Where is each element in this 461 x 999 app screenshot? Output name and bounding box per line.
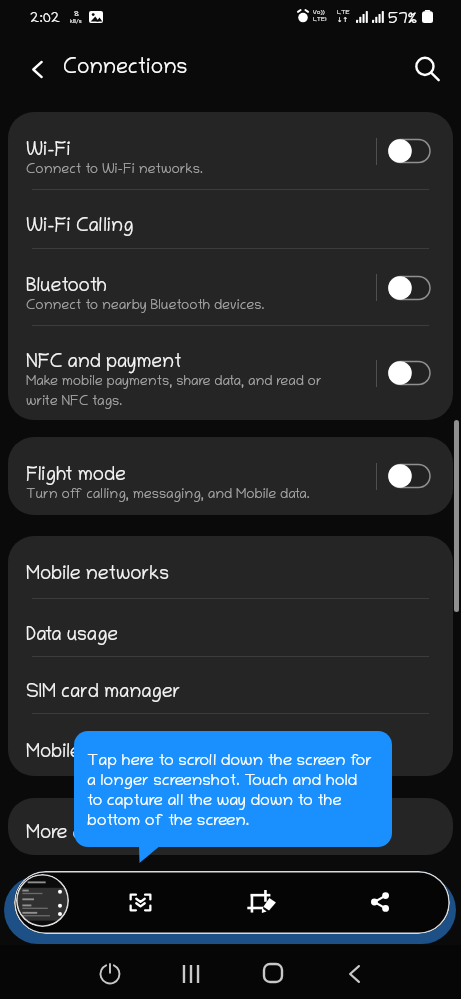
staticText: 8 bbox=[74, 10, 79, 19]
staticText: ↓↑ bbox=[337, 16, 349, 24]
staticText: 57% bbox=[388, 11, 418, 29]
button[interactable]: Flight mode bbox=[8, 437, 453, 515]
button[interactable]: Home bbox=[251, 951, 295, 995]
button[interactable]: Toggle bbox=[377, 456, 433, 496]
staticText: Mobile Hotspot and Tethering bbox=[26, 743, 284, 764]
button[interactable]: Navigate up bbox=[20, 52, 54, 86]
staticText: Connect to nearby Bluetooth devices. bbox=[26, 299, 265, 314]
staticText: Data usage bbox=[26, 626, 119, 647]
button[interactable]: Toggle bbox=[377, 268, 433, 308]
staticText: Make mobile payments, share data, and re… bbox=[26, 375, 354, 410]
staticText: Vo)) bbox=[313, 9, 325, 16]
staticText: Tap here to scroll down the screen for a… bbox=[87, 753, 372, 831]
staticText: Wi-Fi bbox=[26, 141, 71, 162]
staticText: Mobile networks bbox=[26, 565, 169, 586]
button[interactable]: Mobile Hotspot and Tethering bbox=[8, 714, 453, 776]
button[interactable]: Mobile networks bbox=[8, 536, 453, 599]
staticText: 2:02 bbox=[30, 11, 61, 27]
button[interactable]: Power bbox=[88, 952, 132, 996]
button[interactable]: Wi-Fi Calling bbox=[8, 190, 453, 249]
button[interactable]: More connection settings bbox=[8, 798, 453, 855]
button[interactable]: Toggle bbox=[377, 131, 433, 171]
staticText: Wi-Fi Calling bbox=[26, 217, 134, 238]
button[interactable]: Search bbox=[407, 49, 447, 89]
button[interactable]: Scroll capture bbox=[117, 879, 164, 925]
button[interactable]: Recent apps bbox=[169, 952, 213, 996]
button[interactable]: Crop and edit bbox=[238, 879, 285, 925]
staticText: Bluetooth bbox=[26, 277, 108, 298]
staticText: kB/s bbox=[70, 19, 82, 25]
staticText: NFC and payment bbox=[26, 353, 182, 374]
staticText: More connection settings bbox=[26, 824, 246, 845]
button[interactable]: SIM card manager bbox=[8, 657, 453, 714]
staticText: LTE1 bbox=[313, 16, 327, 23]
button[interactable]: Toggle bbox=[377, 353, 433, 393]
button[interactable]: Back bbox=[332, 952, 376, 996]
button[interactable]: NFC and payment bbox=[8, 326, 453, 420]
staticText: Connections bbox=[63, 58, 188, 81]
button[interactable]: Data usage bbox=[8, 599, 453, 657]
staticText: SIM card manager bbox=[26, 683, 181, 704]
button[interactable]: Wi-Fi bbox=[8, 112, 453, 190]
button[interactable]: Share bbox=[356, 879, 403, 925]
staticText: Turn off calling, messaging, and Mobile … bbox=[26, 488, 310, 503]
staticText: LTE bbox=[337, 9, 350, 16]
staticText: Connect to Wi-Fi networks. bbox=[26, 163, 203, 178]
button[interactable]: Bluetooth bbox=[8, 249, 453, 326]
staticText: Flight mode bbox=[26, 466, 126, 487]
button[interactable]: Screenshot preview bbox=[16, 874, 69, 927]
